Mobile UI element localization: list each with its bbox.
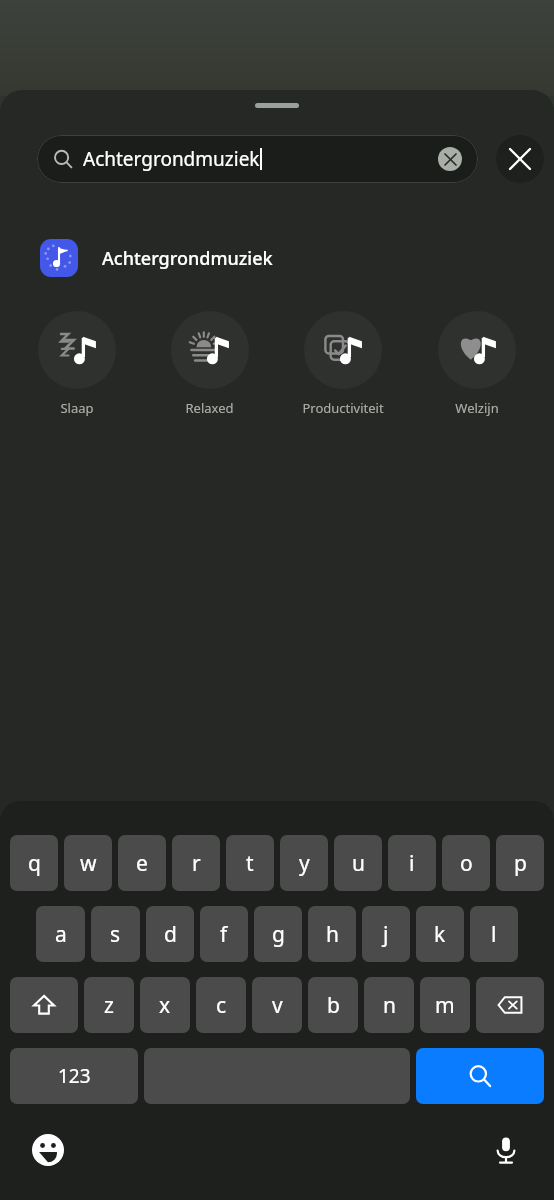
staticText: c (216, 991, 227, 1020)
button[interactable]: z (84, 977, 134, 1033)
button[interactable]: Relaxed (143, 307, 276, 421)
button[interactable]: y (280, 835, 328, 891)
button[interactable]: v (252, 977, 302, 1033)
staticText: a (55, 920, 67, 949)
staticText: t (246, 849, 254, 878)
staticText: j (383, 920, 389, 949)
staticText: Relaxed (185, 399, 234, 417)
staticText: m (435, 991, 455, 1020)
staticText: z (104, 991, 114, 1020)
button[interactable]: x (140, 977, 190, 1033)
staticText: e (136, 849, 148, 878)
button[interactable]: Sluiten (496, 135, 544, 183)
button[interactable]: t (226, 835, 274, 891)
button[interactable]: b (308, 977, 358, 1033)
button[interactable]: Emoji (28, 1130, 68, 1170)
button[interactable]: d (146, 906, 194, 962)
button[interactable]: p (496, 835, 544, 891)
button[interactable]: h (308, 906, 356, 962)
button[interactable]: Welzijn (410, 307, 544, 421)
staticText: o (460, 849, 473, 878)
button[interactable]: l (470, 906, 518, 962)
button[interactable]: f (200, 906, 248, 962)
button[interactable]: g (254, 906, 302, 962)
button[interactable]: e (118, 835, 166, 891)
staticText: 123 (58, 1063, 91, 1089)
staticText: f (220, 920, 228, 949)
button[interactable]: Achtergrondmuziek (37, 135, 478, 183)
staticText: d (164, 920, 177, 949)
staticText: g (272, 920, 285, 949)
button[interactable]: Wissen (438, 147, 462, 171)
staticText: Achtergrondmuziek (102, 246, 273, 271)
staticText: u (352, 849, 365, 878)
button[interactable]: r (172, 835, 220, 891)
button[interactable]: Zoeken (416, 1048, 544, 1104)
staticText: h (326, 920, 339, 949)
staticText: r (192, 849, 201, 878)
button[interactable]: m (420, 977, 470, 1033)
button[interactable]: Productiviteit (276, 307, 410, 421)
button[interactable]: Shift (10, 977, 78, 1033)
button[interactable]: j (362, 906, 410, 962)
button[interactable]: a (36, 906, 85, 962)
button[interactable]: o (442, 835, 490, 891)
staticText: Achtergrondmuziek (83, 146, 260, 172)
staticText: k (434, 920, 446, 949)
button[interactable]: Slaap (10, 307, 143, 421)
staticText: l (491, 920, 497, 949)
staticText: v (272, 991, 283, 1020)
button[interactable]: c (196, 977, 246, 1033)
button[interactable]: u (334, 835, 382, 891)
staticText: y (299, 849, 310, 878)
staticText: x (159, 991, 171, 1020)
button[interactable]: Spraakinvoer (486, 1130, 526, 1170)
staticText: Productiviteit (302, 399, 384, 417)
button[interactable]: Backspace (476, 977, 544, 1033)
staticText: n (383, 991, 396, 1020)
staticText: p (514, 849, 527, 878)
button[interactable]: w (64, 835, 112, 891)
staticText: Slaap (60, 399, 94, 417)
staticText: b (327, 991, 340, 1020)
button[interactable]: Achtergrondmuziek (0, 235, 554, 281)
button[interactable]: 123 (10, 1048, 138, 1104)
staticText: s (110, 920, 121, 949)
button[interactable]: i (388, 835, 436, 891)
staticText: Welzijn (455, 399, 499, 417)
staticText: w (80, 849, 97, 878)
button[interactable]: k (416, 906, 464, 962)
button[interactable]: n (364, 977, 414, 1033)
button[interactable]: q (10, 835, 58, 891)
button[interactable]: s (91, 906, 140, 962)
staticText: i (409, 849, 415, 878)
staticText: q (28, 849, 41, 878)
